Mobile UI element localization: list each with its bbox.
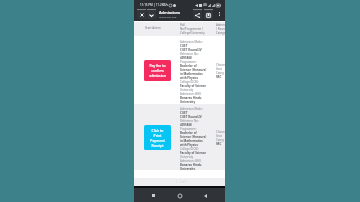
staticText: University xyxy=(180,88,194,92)
button[interactable]: More options xyxy=(215,9,223,19)
staticText: Categ xyxy=(216,138,224,142)
staticText: 1 - 2 of 2 xyxy=(176,180,187,184)
staticText: Start Action xyxy=(145,26,161,30)
staticText: Seat xyxy=(216,134,222,138)
button[interactable]: Pay fee to confirm admission xyxy=(144,60,171,81)
staticText: Click to Print Payment Receipt xyxy=(150,128,165,148)
staticText: with Physics xyxy=(180,143,199,147)
staticText: Reference No: xyxy=(180,52,199,56)
staticText: Visual arts hub xyxy=(159,15,177,18)
staticText: University xyxy=(180,155,194,159)
button[interactable]: Share xyxy=(193,9,202,19)
staticText: Seat xyxy=(216,67,222,71)
staticText: Admiss / Roun Catego xyxy=(216,23,226,35)
staticText: University xyxy=(180,100,196,104)
staticText: Categ xyxy=(216,71,224,75)
staticText: Reference No: xyxy=(180,119,199,123)
button[interactable]: Click to Print Payment Receipt xyxy=(144,125,171,150)
button[interactable]: Bookmark xyxy=(204,9,213,19)
staticText: Admission Mode: xyxy=(180,107,203,111)
staticText: CUET Round-IV xyxy=(180,115,202,119)
button[interactable]: Close xyxy=(137,9,146,19)
staticText: 4095868 xyxy=(180,56,192,60)
staticText: 4G xyxy=(203,3,207,7)
staticText: College (DOS): xyxy=(180,147,199,151)
button[interactable]: Back xyxy=(199,189,212,202)
staticText: Banaras Hindu xyxy=(180,163,202,167)
staticText: Faculty of Science xyxy=(180,84,207,88)
staticText: Programme: xyxy=(180,60,197,64)
staticText: Bachelor of xyxy=(180,64,197,68)
staticText: Science (Honours) xyxy=(180,68,207,72)
staticText: 11:15 PM | 11.2KB/s xyxy=(140,3,168,7)
staticText: Programme: xyxy=(180,127,197,131)
staticText: Admission Mode: xyxy=(180,40,203,44)
staticText: 4095868 xyxy=(180,123,192,127)
button[interactable]: Recents xyxy=(147,189,160,202)
staticText: in Mathematics xyxy=(180,72,203,76)
button[interactable]: Home xyxy=(173,189,186,202)
staticText: Bachelor of xyxy=(180,131,197,135)
staticText: SRC xyxy=(216,75,222,79)
staticText: Faculty of Science xyxy=(180,151,207,155)
staticText: SRC xyxy=(216,142,222,146)
staticText: College (DOS): xyxy=(180,80,199,84)
staticText: University xyxy=(180,167,196,171)
staticText: Roll No/Programme / College/University xyxy=(180,23,205,35)
staticText: Banaras Hindu xyxy=(180,96,202,100)
staticText: Admissions xyxy=(159,10,181,15)
staticText: Choice xyxy=(216,130,225,134)
staticText: CUET xyxy=(180,111,188,115)
staticText: Admission: BHU xyxy=(180,92,202,96)
staticText: Pay fee to confirm admission xyxy=(149,63,166,78)
staticText: in Mathematics xyxy=(180,139,203,143)
staticText: Choice xyxy=(216,63,225,67)
staticText: CUET xyxy=(180,44,188,48)
staticText: CUET Round-IV xyxy=(180,48,202,52)
staticText: Science (Honours) xyxy=(180,135,207,139)
staticText: Admission: BHU xyxy=(180,159,202,163)
button[interactable]: Expand xyxy=(147,9,156,19)
staticText: with Physics xyxy=(180,76,199,80)
